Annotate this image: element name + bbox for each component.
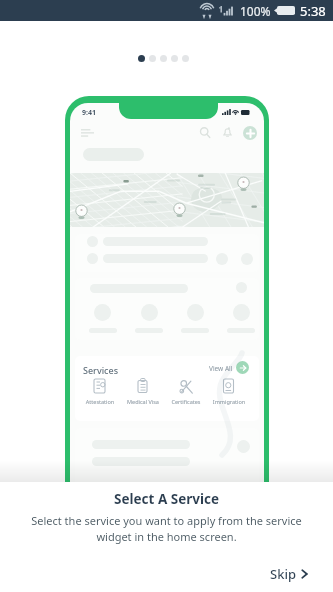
staticText: 100% bbox=[240, 3, 271, 19]
button[interactable] bbox=[215, 376, 243, 409]
button[interactable]: Menu bbox=[76, 123, 97, 141]
button[interactable]: View All bbox=[236, 361, 249, 374]
button[interactable]: Skip bbox=[264, 561, 314, 587]
staticText: Select A Service bbox=[0, 490, 333, 508]
staticText: Skip bbox=[270, 565, 296, 583]
staticText: Certificates bbox=[164, 398, 208, 405]
button[interactable]: Add bbox=[243, 126, 257, 140]
staticText: Attestation bbox=[78, 398, 122, 405]
staticText: Select the service you want to apply fro… bbox=[25, 513, 308, 544]
button[interactable]: Search bbox=[196, 123, 214, 141]
button[interactable] bbox=[86, 376, 114, 409]
staticText: Services bbox=[83, 364, 119, 376]
staticText: 5:38 bbox=[300, 2, 326, 20]
staticText: Immigration bbox=[207, 398, 251, 405]
button[interactable] bbox=[129, 376, 157, 409]
button[interactable] bbox=[172, 376, 200, 409]
staticText: Medical Visa bbox=[121, 398, 165, 405]
staticText: View All bbox=[209, 364, 233, 373]
button[interactable]: Services bbox=[75, 356, 259, 421]
button[interactable]: Notifications bbox=[218, 123, 236, 141]
staticText: 9:41 bbox=[82, 108, 96, 118]
